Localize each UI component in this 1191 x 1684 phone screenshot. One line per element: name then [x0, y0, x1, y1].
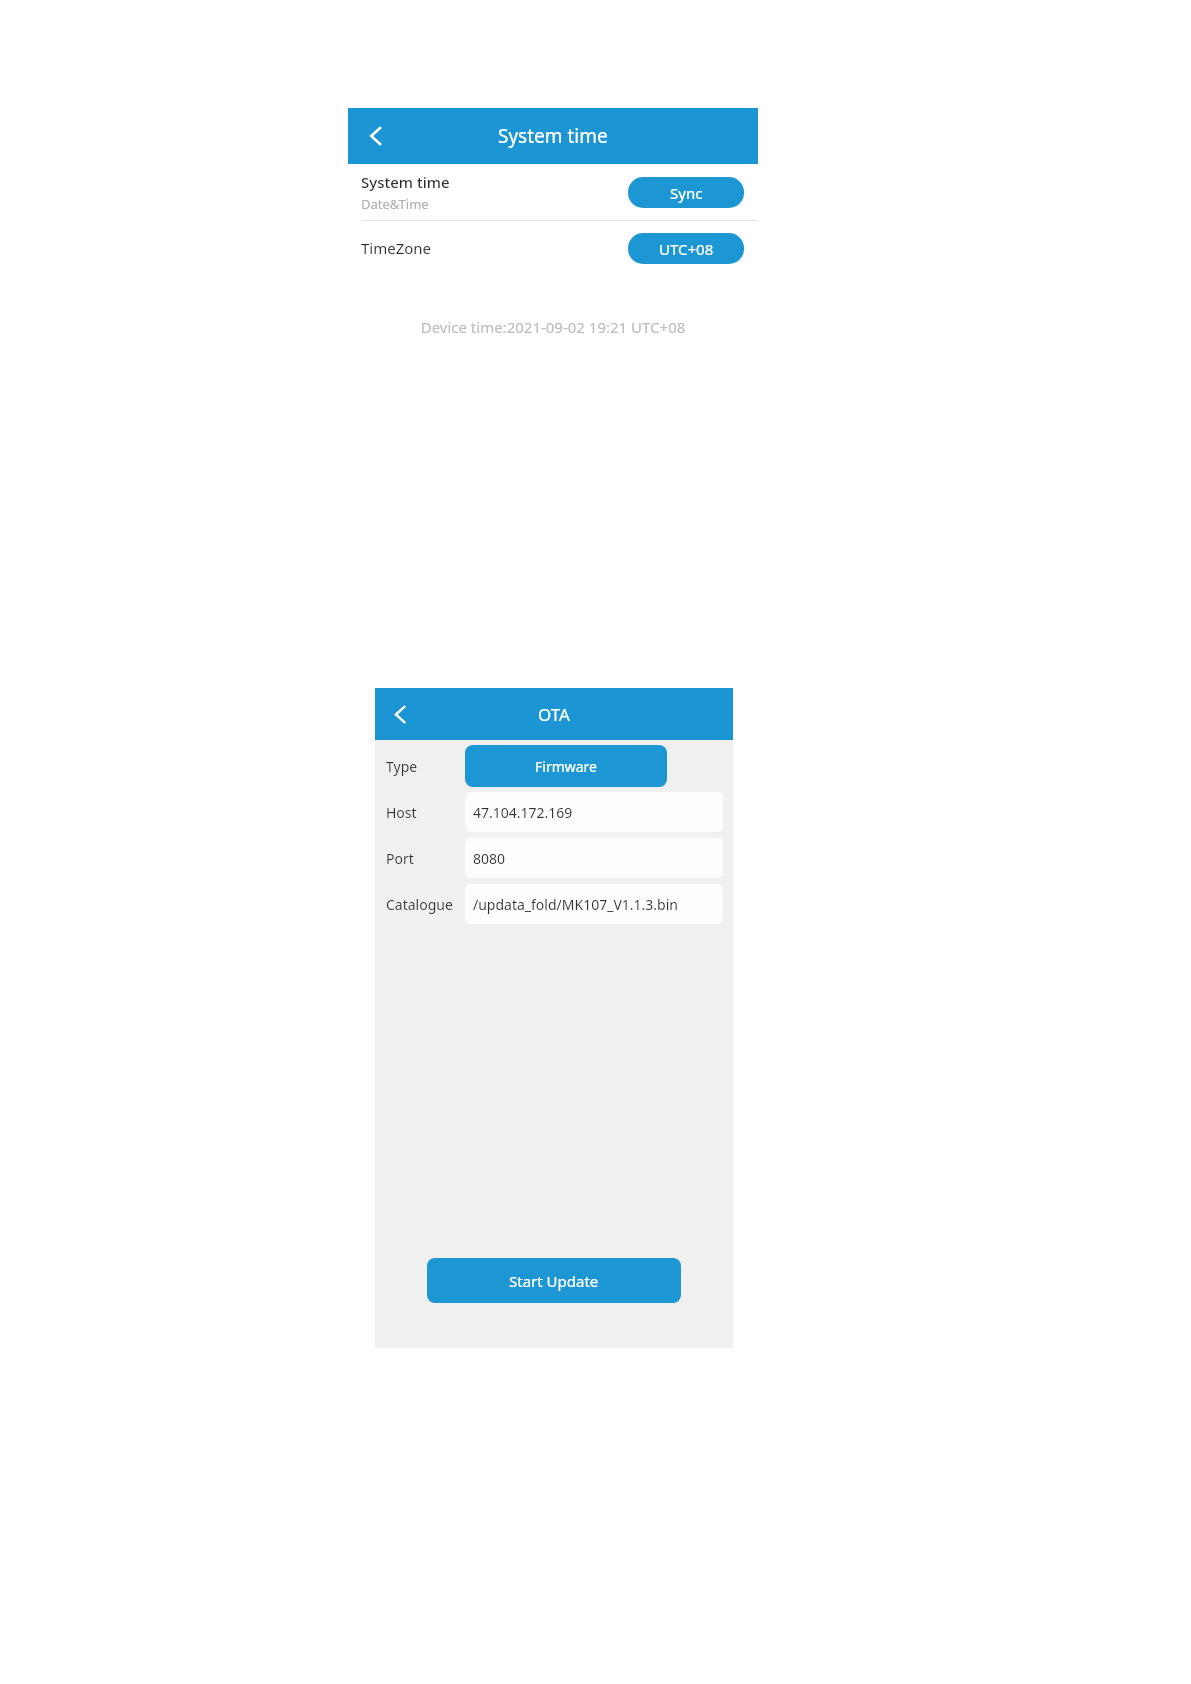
staticText: Device time:2021-09-02 19:21 UTC+08 — [348, 317, 758, 337]
staticText: Firmware — [535, 757, 598, 776]
button[interactable]: 47.104.172.169 — [465, 792, 723, 832]
staticText: UTC+08 — [659, 239, 714, 259]
staticText: Host — [386, 803, 417, 822]
button[interactable]: TimeZone — [348, 221, 758, 275]
button[interactable]: System time — [348, 164, 758, 220]
button[interactable]: Back — [355, 115, 397, 157]
button[interactable]: UTC+08 — [628, 233, 744, 264]
staticText: OTA — [538, 703, 570, 726]
button[interactable]: 8080 — [465, 838, 723, 878]
staticText: System time — [361, 172, 450, 192]
staticText: Start Update — [509, 1271, 599, 1291]
staticText: Type — [386, 757, 418, 776]
staticText: Date&Time — [361, 195, 429, 213]
staticText: Port — [386, 849, 414, 868]
button[interactable]: Sync — [628, 177, 744, 208]
staticText: Catalogue — [386, 895, 453, 914]
staticText: 47.104.172.169 — [473, 803, 573, 822]
button[interactable]: Firmware — [465, 745, 667, 787]
button[interactable]: Back — [380, 694, 420, 734]
staticText: /updata_fold/MK107_V1.1.3.bin — [473, 895, 678, 914]
staticText: 8080 — [473, 849, 506, 868]
staticText: System time — [498, 123, 608, 149]
button[interactable]: /updata_fold/MK107_V1.1.3.bin — [465, 884, 723, 924]
staticText: Sync — [670, 183, 703, 203]
staticText: TimeZone — [361, 238, 628, 258]
button[interactable]: Start Update — [427, 1258, 681, 1303]
